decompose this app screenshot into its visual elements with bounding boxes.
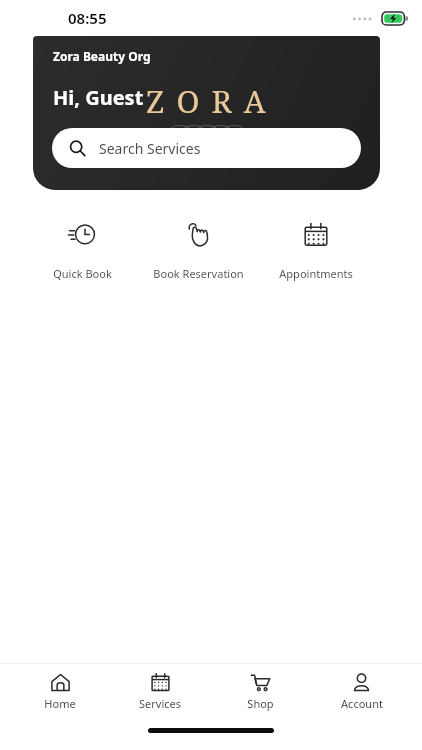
- staticText: Zora Beauty Org: [53, 48, 151, 64]
- staticText: 08:55: [68, 8, 107, 28]
- button[interactable]: Home: [10, 668, 110, 714]
- staticText: Quick Book: [53, 266, 112, 281]
- staticText: Shop: [247, 696, 274, 711]
- staticText: Search Services: [99, 139, 201, 158]
- staticText: Home: [44, 696, 76, 711]
- staticText: Hi, Guest: [53, 84, 144, 111]
- button[interactable]: Quick Book: [24, 216, 140, 285]
- button[interactable]: Account: [311, 668, 412, 714]
- staticText: Z O R A: [146, 80, 268, 122]
- staticText: Book Reservation: [153, 266, 244, 281]
- staticText: Services: [139, 696, 181, 711]
- button[interactable]: Shop: [210, 668, 311, 714]
- button[interactable]: Book Reservation: [140, 216, 257, 285]
- button[interactable]: Services: [110, 668, 210, 714]
- staticText: Appointments: [279, 266, 353, 281]
- button[interactable]: Appointments: [257, 216, 374, 285]
- button[interactable]: Search Services: [52, 128, 361, 168]
- staticText: Account: [341, 696, 383, 711]
